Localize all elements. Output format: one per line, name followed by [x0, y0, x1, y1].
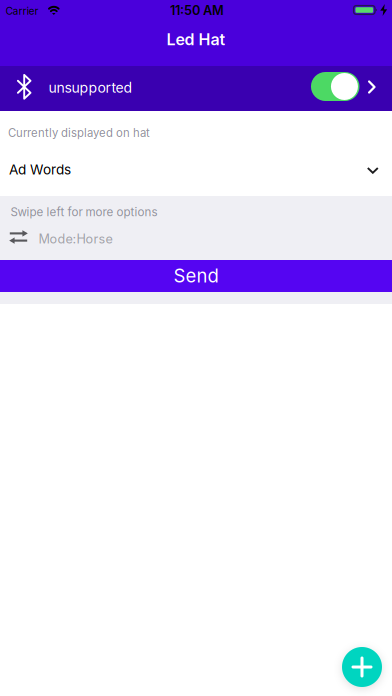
button[interactable]: Add [342, 647, 382, 687]
button[interactable]: Ad Words [0, 154, 392, 184]
staticText: Currently displayed on hat [8, 126, 150, 140]
button[interactable]: unsupported [0, 66, 392, 111]
staticText: Carrier [5, 5, 38, 17]
staticText: Mode:Horse [38, 231, 112, 246]
staticText: unsupported [48, 79, 132, 96]
staticText: Ad Words [9, 161, 71, 177]
staticText: 11:50 AM [170, 3, 224, 18]
button[interactable]: Bluetooth [311, 72, 359, 101]
staticText: Swipe left for more options [10, 205, 157, 219]
staticText: Send [173, 265, 218, 287]
staticText: Led Hat [166, 30, 225, 49]
button[interactable]: Mode:Horse [0, 226, 392, 248]
button[interactable]: Send [0, 260, 392, 292]
